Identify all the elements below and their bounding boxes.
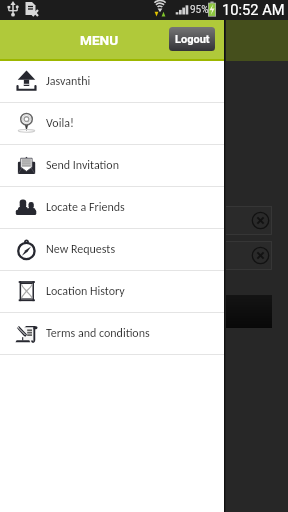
button[interactable]: [16, 206, 272, 235]
button[interactable]: [16, 241, 272, 270]
staticText: New Requests: [46, 242, 116, 257]
staticText: Logout: [175, 33, 210, 46]
staticText: Terms and conditions: [46, 326, 150, 341]
button[interactable]: Send invitation: [0, 145, 224, 187]
other: Friends: [15, 196, 38, 219]
other: Location: [15, 112, 38, 135]
other: Location history: [15, 280, 38, 303]
button[interactable]: [16, 295, 272, 328]
button[interactable]: Friends: [0, 187, 224, 229]
staticText: Jasvanthi: [46, 74, 91, 89]
staticText: Locate a Friends: [46, 200, 125, 215]
other: Send invitation: [15, 154, 38, 177]
staticText: Voila!: [46, 116, 74, 131]
staticText: 95%: [190, 4, 209, 16]
staticText: Location History: [46, 284, 125, 299]
button[interactable]: Location history: [0, 271, 224, 313]
staticText: MENU: [80, 32, 119, 48]
button[interactable]: Terms and conditions: [0, 313, 224, 355]
other: Profile: [15, 70, 38, 93]
button[interactable]: Logout: [169, 27, 215, 51]
other: New requests: [15, 238, 38, 261]
staticText: Send Invitation: [46, 158, 119, 173]
staticText: 10:52 AM: [222, 1, 285, 18]
other: Terms and conditions: [15, 322, 38, 345]
button[interactable]: New requests: [0, 229, 224, 271]
button[interactable]: Profile: [0, 61, 224, 103]
button[interactable]: Location: [0, 103, 224, 145]
